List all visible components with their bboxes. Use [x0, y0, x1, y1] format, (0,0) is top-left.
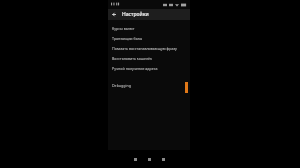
staticText: Курсы валют	[112, 26, 135, 31]
staticText: Транзакции базы	[112, 36, 143, 41]
button[interactable]: Курсы валют	[108, 23, 190, 33]
staticText: Debugging	[112, 83, 131, 88]
button[interactable]: Home	[143, 153, 155, 165]
button[interactable]: Транзакции базы	[108, 33, 190, 43]
staticText: Ручной получение адреса	[112, 66, 158, 71]
button[interactable]: Ручной получение адреса	[108, 63, 190, 73]
staticText: Восстановить кошелёк	[112, 56, 152, 61]
button[interactable]: Back	[110, 10, 119, 19]
staticText: Настройки	[122, 11, 149, 18]
button[interactable]: Debugging	[108, 80, 190, 90]
staticText: Показать восстанавливающую фразу	[112, 46, 177, 51]
button[interactable]: Recent apps	[157, 153, 169, 165]
button[interactable]: Показать восстанавливающую фразу	[108, 43, 190, 53]
button[interactable]: Восстановить кошелёк	[108, 53, 190, 63]
button[interactable]: Back	[129, 153, 141, 165]
